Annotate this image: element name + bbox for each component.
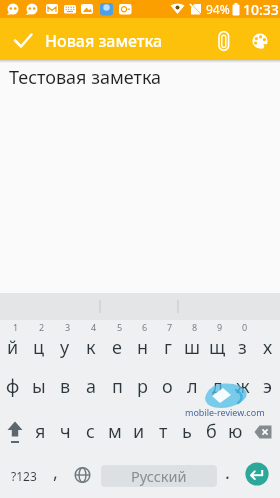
staticText: о	[162, 374, 173, 399]
button[interactable]: а	[78, 366, 104, 410]
staticText: е	[112, 335, 122, 360]
button[interactable]	[238, 18, 280, 60]
staticText: 7	[167, 321, 173, 333]
staticText: р	[137, 374, 148, 399]
button[interactable]	[0, 18, 42, 60]
button[interactable]: 4	[78, 320, 104, 366]
staticText: в	[60, 374, 71, 399]
button[interactable]: и	[127, 410, 151, 454]
button[interactable]: ж	[230, 366, 255, 410]
staticText: й	[7, 335, 19, 360]
button[interactable]: 2	[26, 320, 52, 366]
button[interactable]: д	[205, 366, 230, 410]
button[interactable]	[0, 410, 28, 454]
staticText: ю	[228, 419, 243, 444]
button[interactable]	[63, 454, 101, 498]
button[interactable]	[196, 18, 238, 60]
staticText: к	[86, 335, 96, 360]
staticText: ,	[53, 460, 58, 485]
staticText: 5	[117, 321, 123, 333]
button[interactable]: ь	[175, 410, 199, 454]
button[interactable]: с	[78, 410, 103, 454]
button[interactable]: 0	[230, 320, 255, 366]
staticText: mobile-review.com	[185, 406, 265, 418]
button[interactable]: ф	[0, 366, 26, 410]
staticText: ф	[6, 374, 20, 399]
staticText: 0	[242, 321, 248, 333]
button[interactable]: 6	[130, 320, 155, 366]
button[interactable]: Русский	[101, 465, 217, 487]
button[interactable]: 8	[180, 320, 205, 366]
staticText: ж	[236, 374, 250, 399]
staticText: 9	[217, 321, 223, 333]
staticText: э	[263, 374, 272, 399]
button[interactable]: ч	[53, 410, 78, 454]
button[interactable]	[237, 454, 280, 498]
staticText: б	[206, 419, 217, 444]
button[interactable]: р	[130, 366, 155, 410]
staticText: ы	[32, 374, 46, 399]
staticText: г	[164, 335, 172, 360]
button[interactable]: ю	[223, 410, 247, 454]
staticText: х	[263, 335, 273, 360]
staticText: ч	[60, 419, 71, 444]
staticText: з	[238, 335, 247, 360]
staticText: .	[225, 460, 230, 485]
staticText: т	[159, 419, 168, 444]
button[interactable]: ,	[48, 454, 63, 498]
staticText: м	[108, 419, 122, 444]
staticText: 6	[142, 321, 148, 333]
staticText: Тестовая заметка	[9, 65, 162, 90]
staticText: 4	[91, 321, 97, 333]
staticText: 8	[192, 321, 198, 333]
button[interactable]: я	[28, 410, 53, 454]
button[interactable]: .	[217, 454, 237, 498]
staticText: 10:33	[243, 0, 279, 18]
button[interactable]: 7	[155, 320, 180, 366]
button[interactable]: б	[199, 410, 223, 454]
button[interactable]: п	[104, 366, 130, 410]
staticText: я	[35, 419, 46, 444]
staticText: л	[187, 374, 198, 399]
button[interactable]: 9	[205, 320, 230, 366]
staticText: у	[60, 335, 70, 360]
staticText: и	[133, 419, 145, 444]
staticText: с	[86, 419, 95, 444]
staticText: 1	[13, 321, 19, 333]
staticText: Русский	[131, 466, 187, 486]
staticText: ц	[33, 335, 45, 360]
staticText: 3	[65, 321, 71, 333]
staticText: щ	[209, 335, 226, 360]
staticText: ?123	[11, 468, 37, 484]
button[interactable]: 5	[104, 320, 130, 366]
button[interactable]: м	[103, 410, 127, 454]
button[interactable]: х	[255, 320, 280, 366]
button[interactable]: э	[255, 366, 280, 410]
button[interactable]: ?123	[0, 454, 48, 498]
button[interactable]: в	[52, 366, 78, 410]
button[interactable]: ы	[26, 366, 52, 410]
staticText: 2	[39, 321, 45, 333]
button[interactable]: л	[180, 366, 205, 410]
button[interactable]: о	[155, 366, 180, 410]
staticText: а	[86, 374, 97, 399]
button[interactable]: 1	[0, 320, 26, 366]
staticText: 94%	[206, 1, 230, 17]
staticText: п	[112, 374, 123, 399]
staticText: ь	[182, 419, 192, 444]
staticText: ш	[184, 335, 201, 360]
button[interactable]: т	[151, 410, 175, 454]
staticText: д	[212, 374, 223, 399]
staticText: Новая заметка	[45, 30, 163, 52]
staticText: н	[137, 335, 149, 360]
button[interactable]: 3	[52, 320, 78, 366]
button[interactable]	[247, 410, 280, 454]
